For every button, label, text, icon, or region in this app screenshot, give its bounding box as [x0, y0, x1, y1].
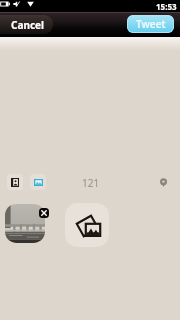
button[interactable]: Cancel: [0, 15, 53, 34]
staticText: 15:53: [156, 1, 177, 12]
staticText: 121: [82, 176, 100, 190]
button[interactable]: Remove photo: [39, 208, 49, 218]
button[interactable]: Attached photo: [5, 204, 45, 243]
button[interactable]: Attach photo: [30, 174, 46, 190]
staticText: Cancel: [11, 18, 45, 32]
staticText: Tweet: [136, 17, 166, 31]
button[interactable]: Add location: [155, 174, 171, 190]
button[interactable]: Add contact: [7, 174, 23, 190]
button[interactable]: Tweet: [127, 15, 174, 33]
button[interactable]: Add photo: [65, 203, 109, 247]
